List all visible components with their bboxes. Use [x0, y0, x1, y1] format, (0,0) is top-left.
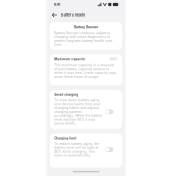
staticText: Battery health	[61, 13, 85, 17]
button[interactable]: Charging limit	[105, 147, 113, 152]
staticText: The maximum capacity is a measure of you…	[54, 63, 116, 79]
staticText: Smart charging	[54, 93, 78, 97]
staticText: Maximum capacity	[54, 57, 85, 61]
staticText: To reduce battery aging, the battery lev…	[54, 142, 99, 157]
staticText: Battery Booster	[74, 25, 98, 29]
staticText: Battery Booster combines adaptive chargi…	[54, 31, 112, 47]
button[interactable]: Back	[51, 11, 58, 19]
button[interactable]: Smart charging	[105, 109, 113, 114]
staticText: Charging limit	[54, 136, 76, 140]
staticText: 9:41	[54, 2, 61, 7]
staticText: To slow down battery aging, your device …	[54, 98, 102, 125]
staticText: 100%	[110, 57, 118, 61]
